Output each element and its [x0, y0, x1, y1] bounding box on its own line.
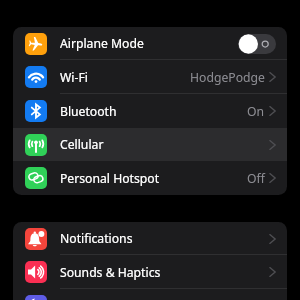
staticText: Wi-Fi [60, 69, 88, 86]
button[interactable]: Personal Hotspot [13, 161, 287, 195]
staticText: Sounds & Haptics [60, 264, 161, 281]
button[interactable]: Airplane Mode [13, 27, 287, 60]
button[interactable]: Sounds & Haptics [13, 255, 287, 289]
button[interactable]: Airplane Mode toggle [238, 34, 276, 54]
button[interactable]: Wi-Fi [13, 60, 287, 94]
button[interactable]: Bluetooth [13, 94, 287, 128]
button[interactable]: Cellular [13, 128, 287, 161]
button[interactable]: Notifications [13, 222, 287, 255]
staticText: Cellular [60, 136, 104, 153]
staticText: Bluetooth [60, 103, 117, 120]
button[interactable]: Focus [13, 289, 287, 300]
staticText: Airplane Mode [60, 35, 144, 52]
staticText: Personal Hotspot [60, 170, 160, 187]
staticText: Off [247, 170, 265, 187]
staticText: Notifications [60, 230, 133, 247]
staticText: On [247, 103, 265, 120]
staticText: HodgePodge [190, 69, 265, 86]
